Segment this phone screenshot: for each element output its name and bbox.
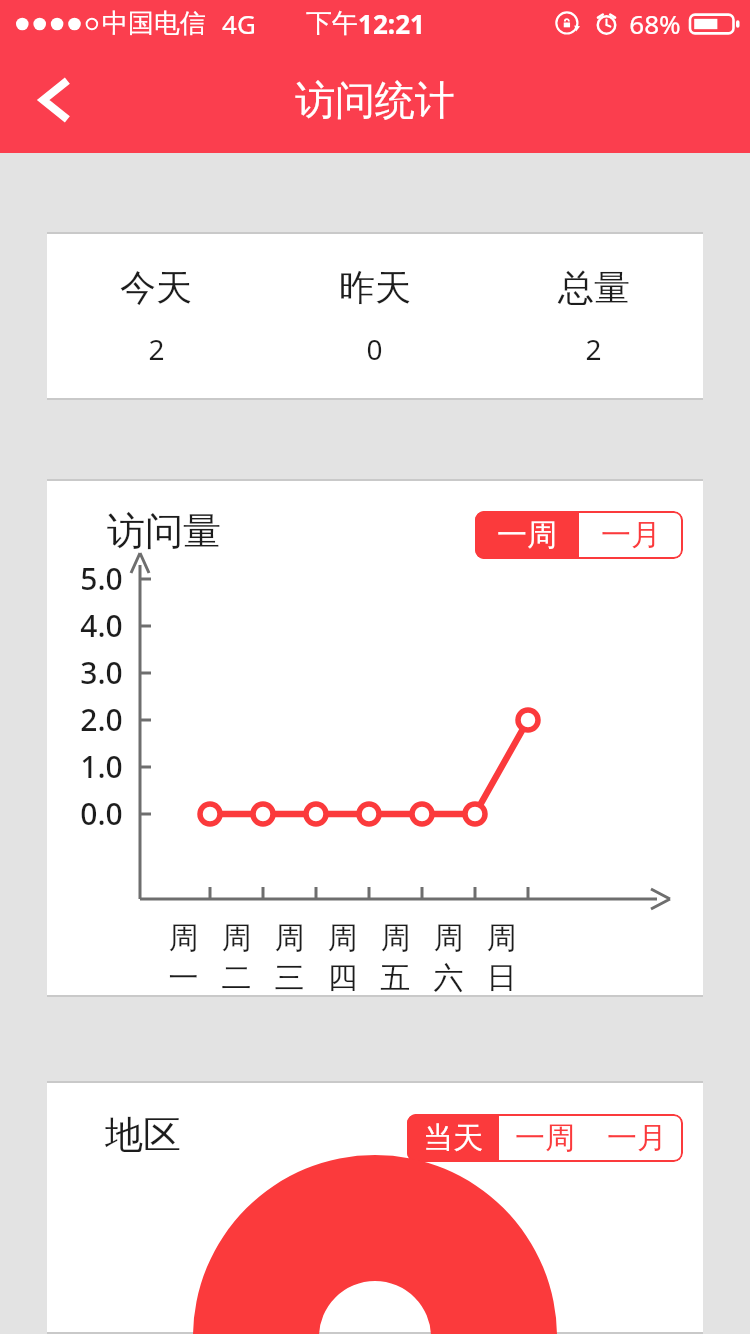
button[interactable]: 总量 <box>484 232 703 400</box>
staticText: 12:21 <box>358 6 425 41</box>
button[interactable]: Back <box>0 46 110 153</box>
staticText: 2 <box>585 330 602 368</box>
button[interactable]: 昨天 <box>265 232 484 400</box>
staticText: 中国电信 <box>102 7 206 40</box>
staticText: 2 <box>148 330 165 368</box>
staticText: 5.0 <box>80 558 123 599</box>
staticText: 访问量 <box>107 507 221 555</box>
button[interactable]: 一月 <box>579 511 683 559</box>
staticText: 地区 <box>105 1111 181 1159</box>
staticText: 当天 <box>423 1119 483 1157</box>
staticText: 昨天 <box>339 265 411 310</box>
staticText: 周六 <box>422 919 475 997</box>
button[interactable]: 一周 <box>475 511 579 559</box>
staticText: 今天 <box>120 265 192 310</box>
button[interactable]: 今天 <box>47 232 265 400</box>
staticText: 4G <box>222 6 256 41</box>
staticText: 3.0 <box>80 652 123 693</box>
staticText: 周一 <box>157 919 210 997</box>
staticText: 一月 <box>601 516 661 554</box>
staticText: 周二 <box>210 919 263 997</box>
staticText: 一月 <box>607 1119 667 1157</box>
staticText: 周三 <box>263 919 316 997</box>
button[interactable]: 当天 <box>407 1114 499 1162</box>
staticText: 周四 <box>316 919 369 997</box>
button[interactable]: 一月 <box>591 1114 683 1162</box>
staticText: 0.0 <box>80 793 123 834</box>
staticText: 访问统计 <box>295 75 455 125</box>
staticText: 一周 <box>497 516 557 554</box>
staticText: 2.0 <box>80 699 123 740</box>
button[interactable]: 一周 <box>499 1114 591 1162</box>
staticText: 周五 <box>369 919 422 997</box>
staticText: 68% <box>629 6 681 41</box>
staticText: 一周 <box>515 1119 575 1157</box>
staticText: 周日 <box>475 919 528 997</box>
staticText: 1.0 <box>80 746 123 787</box>
staticText: 下午 <box>306 7 358 40</box>
staticText: 0 <box>366 330 383 368</box>
staticText: 总量 <box>558 265 630 310</box>
staticText: 4.0 <box>80 605 123 646</box>
